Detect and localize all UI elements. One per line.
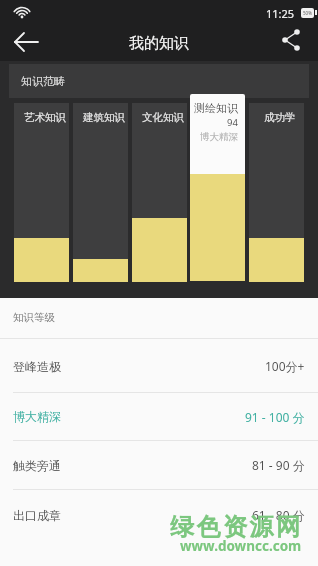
button[interactable]: 文化知识 xyxy=(132,103,187,282)
staticText: 登峰造极 xyxy=(13,359,61,374)
button[interactable]: 建筑知识 xyxy=(73,103,128,282)
staticText: 11:25 xyxy=(266,6,295,21)
staticText: 知识范畴 xyxy=(21,74,65,88)
button[interactable]: 触类旁通 xyxy=(0,441,318,489)
staticText: 50% xyxy=(303,10,312,16)
button[interactable] xyxy=(274,26,310,56)
staticText: 博大精深 xyxy=(200,131,238,143)
staticText: 测绘知识 xyxy=(194,101,238,115)
staticText: 81 - 90 分 xyxy=(252,457,305,473)
staticText: 91 - 100 分 xyxy=(245,409,305,425)
staticText: 我的知识 xyxy=(129,34,189,53)
staticText: 成功学 xyxy=(264,111,296,124)
button[interactable]: 出口成章 xyxy=(0,490,318,540)
button[interactable] xyxy=(4,28,48,58)
button[interactable]: 成功学 xyxy=(249,103,304,282)
staticText: 建筑知识 xyxy=(83,111,125,124)
staticText: 100分+ xyxy=(265,358,305,374)
staticText: 文化知识 xyxy=(142,111,184,124)
staticText: 绿色资源网 xyxy=(170,512,303,542)
staticText: 博大精深 xyxy=(13,409,61,424)
staticText: www.downcc.com xyxy=(180,537,302,555)
staticText: 知识等级 xyxy=(13,311,55,324)
staticText: 61 - 80 分 xyxy=(252,507,305,523)
staticText: 出口成章 xyxy=(13,508,61,523)
button[interactable]: 登峰造极 xyxy=(0,339,318,393)
button[interactable]: 博大精深 xyxy=(0,393,318,440)
button[interactable]: 艺术知识 xyxy=(14,103,69,282)
staticText: 94 xyxy=(227,116,238,129)
button[interactable]: 测绘知识 xyxy=(190,94,245,281)
staticText: 艺术知识 xyxy=(24,111,66,124)
staticText: 触类旁通 xyxy=(13,458,61,473)
